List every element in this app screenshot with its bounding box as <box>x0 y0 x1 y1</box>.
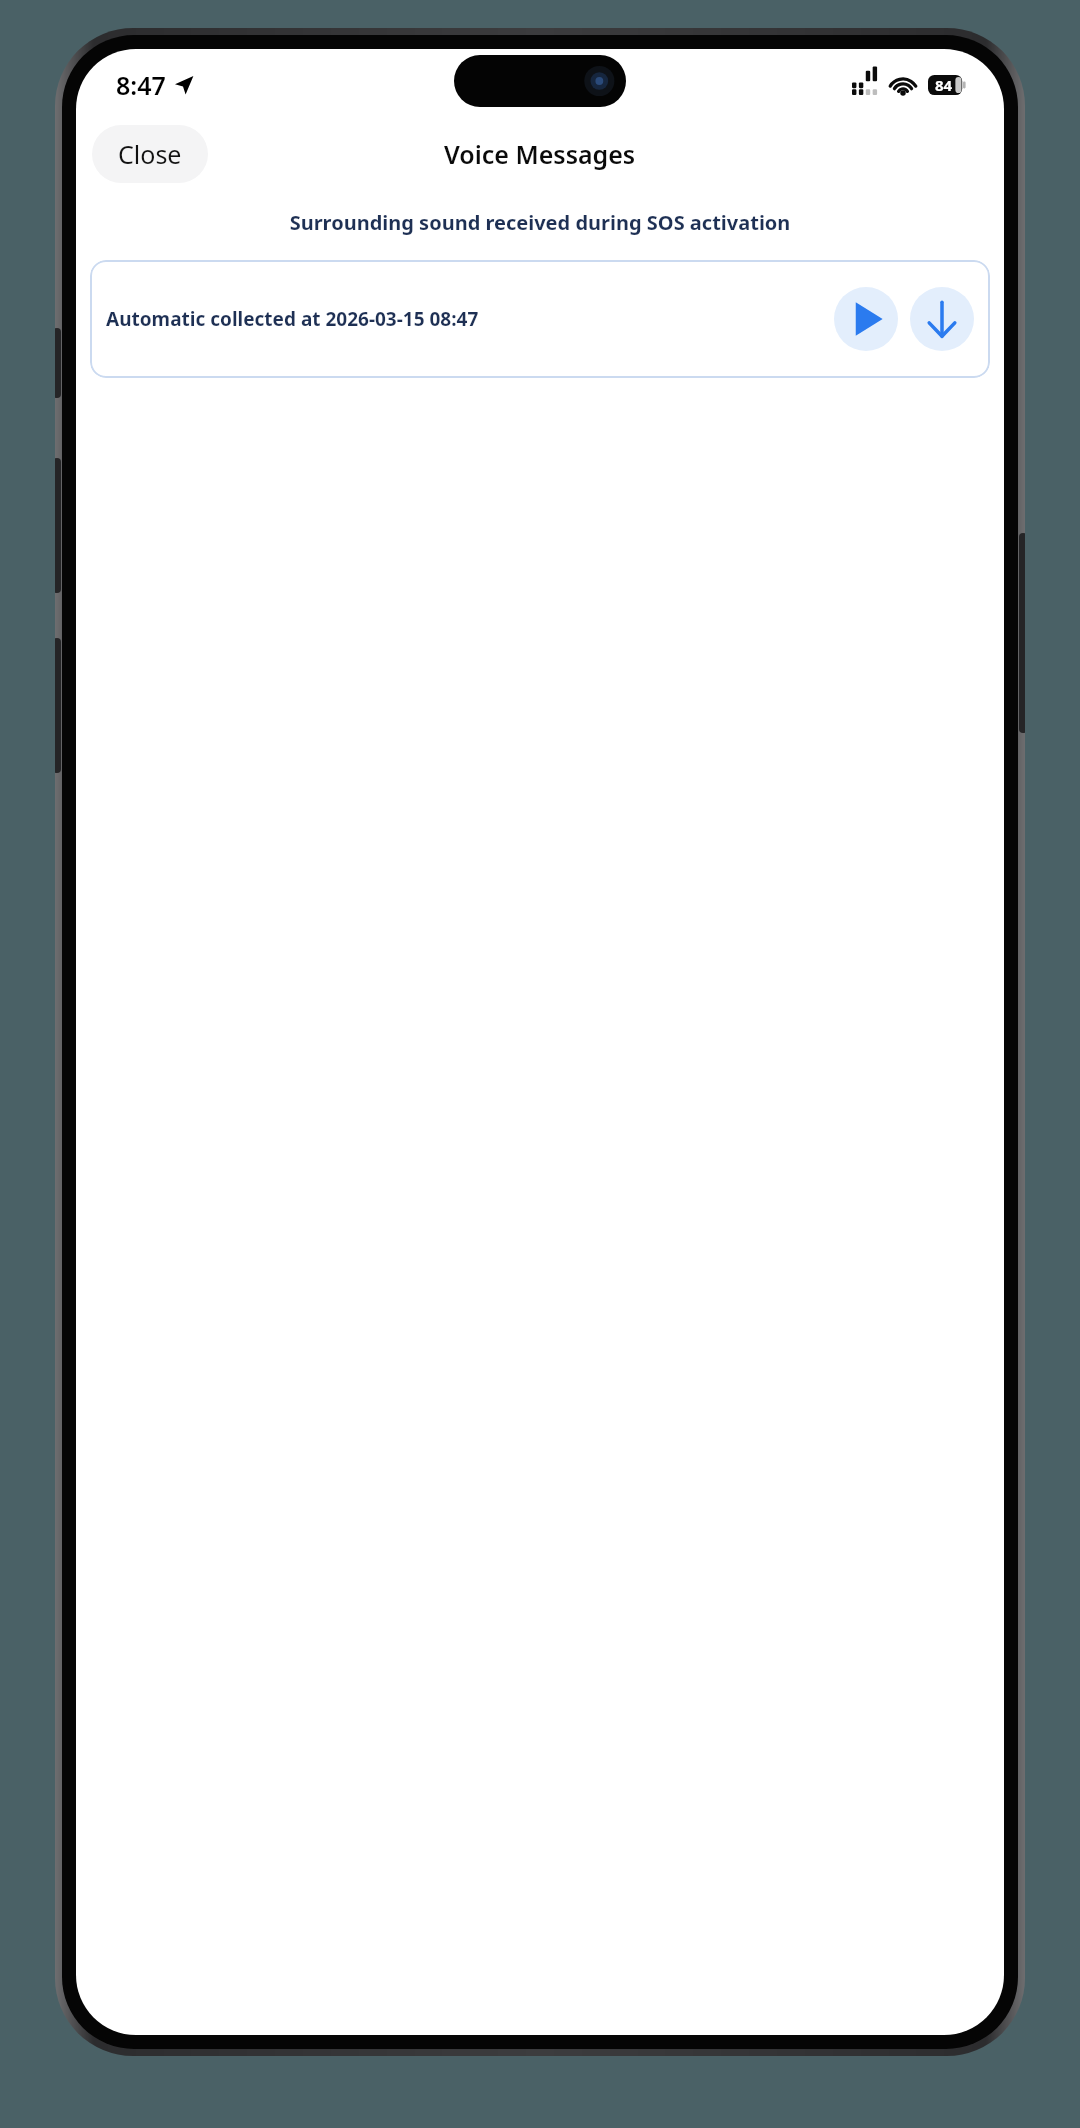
staticText: 8:47 <box>116 68 166 102</box>
button[interactable]: Close <box>92 125 208 183</box>
staticText: 84 <box>935 75 953 95</box>
button[interactable]: Play <box>834 287 898 351</box>
staticText: Close <box>118 137 182 171</box>
staticText: Automatic collected at 2026-03-15 08:47 <box>106 306 828 332</box>
button[interactable]: Automatic collected at 2026-03-15 08:47 <box>90 260 990 378</box>
staticText: Surrounding sound received during SOS ac… <box>88 209 992 236</box>
staticText: Voice Messages <box>444 137 636 171</box>
button[interactable]: Download <box>910 287 974 351</box>
